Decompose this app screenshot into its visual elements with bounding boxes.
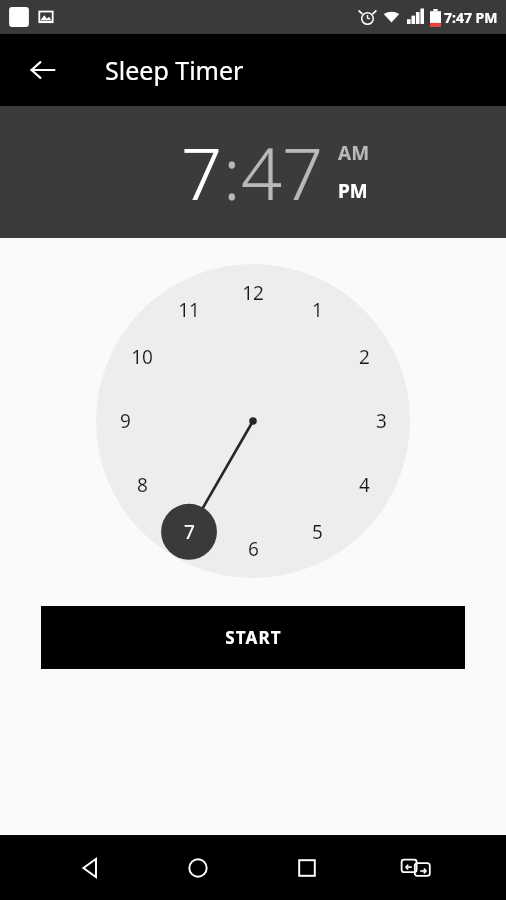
button[interactable]: AM [338, 140, 370, 166]
button[interactable]: 3 [355, 395, 407, 447]
button[interactable]: 7 [181, 123, 223, 221]
button[interactable]: 9 [99, 395, 151, 447]
staticText: 2 [359, 344, 370, 370]
button[interactable]: 12 [227, 267, 279, 319]
staticText: 6 [248, 536, 259, 562]
button[interactable]: START [41, 606, 465, 669]
staticText: 4 [359, 472, 370, 498]
button[interactable]: Switch apps [361, 835, 470, 900]
button[interactable]: 6 [227, 523, 279, 575]
button[interactable]: Recent apps [252, 835, 361, 900]
staticText: 10 [131, 344, 153, 370]
staticText: 11 [178, 297, 200, 323]
staticText: 9 [120, 408, 131, 434]
staticText: Sleep Timer [105, 53, 244, 87]
button[interactable]: 7 [163, 506, 215, 558]
staticText: 1 [312, 297, 323, 323]
staticText: : [223, 123, 241, 221]
button[interactable]: Back [18, 45, 68, 95]
staticText: 7:47 PM [444, 8, 498, 27]
staticText: 5 [312, 519, 323, 545]
staticText: 3 [376, 408, 387, 434]
button[interactable]: 1 [291, 284, 343, 336]
staticText: 7 [184, 519, 195, 545]
button[interactable]: 4 [338, 459, 390, 511]
button[interactable]: 2 [338, 331, 390, 383]
button[interactable]: PM [338, 178, 368, 204]
button[interactable]: Back [36, 835, 144, 900]
button[interactable]: 8 [116, 459, 168, 511]
button[interactable]: 47 [241, 123, 324, 221]
staticText: 12 [242, 280, 264, 306]
staticText: START [225, 626, 282, 649]
button[interactable]: 11 [163, 284, 215, 336]
button[interactable]: Home [144, 835, 252, 900]
button[interactable]: 10 [116, 331, 168, 383]
button[interactable]: 5 [291, 506, 343, 558]
staticText: 8 [137, 472, 148, 498]
